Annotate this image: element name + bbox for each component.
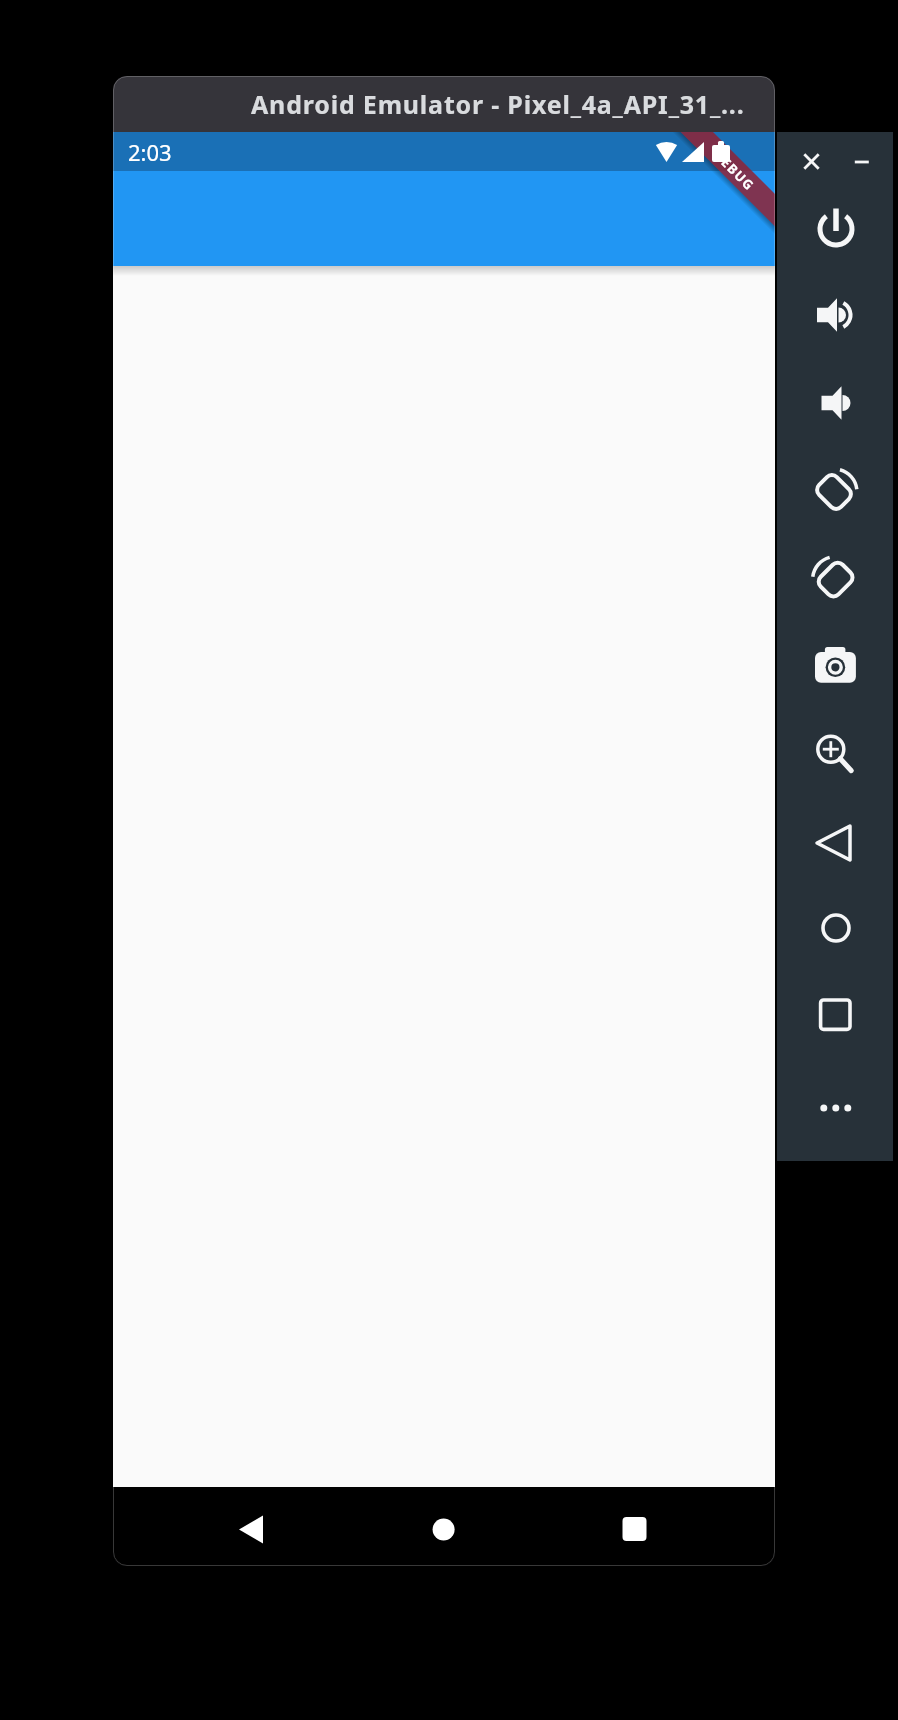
button[interactable] xyxy=(806,638,866,698)
button[interactable] xyxy=(806,375,866,435)
button[interactable]: Android Emulator - Pixel_4a_API_31_... xyxy=(113,76,775,132)
button[interactable] xyxy=(806,550,866,610)
button[interactable] xyxy=(211,1489,291,1564)
button[interactable] xyxy=(841,143,881,183)
button[interactable] xyxy=(806,200,866,260)
staticText: DEBUG xyxy=(710,146,758,194)
button[interactable] xyxy=(806,726,866,786)
button[interactable] xyxy=(806,463,866,523)
button[interactable] xyxy=(403,1489,483,1564)
staticText: 2:03 xyxy=(128,137,172,167)
staticText: Android Emulator - Pixel_4a_API_31_... xyxy=(251,87,745,121)
button[interactable] xyxy=(791,143,831,183)
button[interactable] xyxy=(806,813,866,873)
button[interactable] xyxy=(806,288,866,348)
button[interactable] xyxy=(806,1075,866,1135)
button[interactable] xyxy=(806,901,866,961)
button[interactable] xyxy=(595,1489,675,1564)
button[interactable] xyxy=(806,988,866,1048)
